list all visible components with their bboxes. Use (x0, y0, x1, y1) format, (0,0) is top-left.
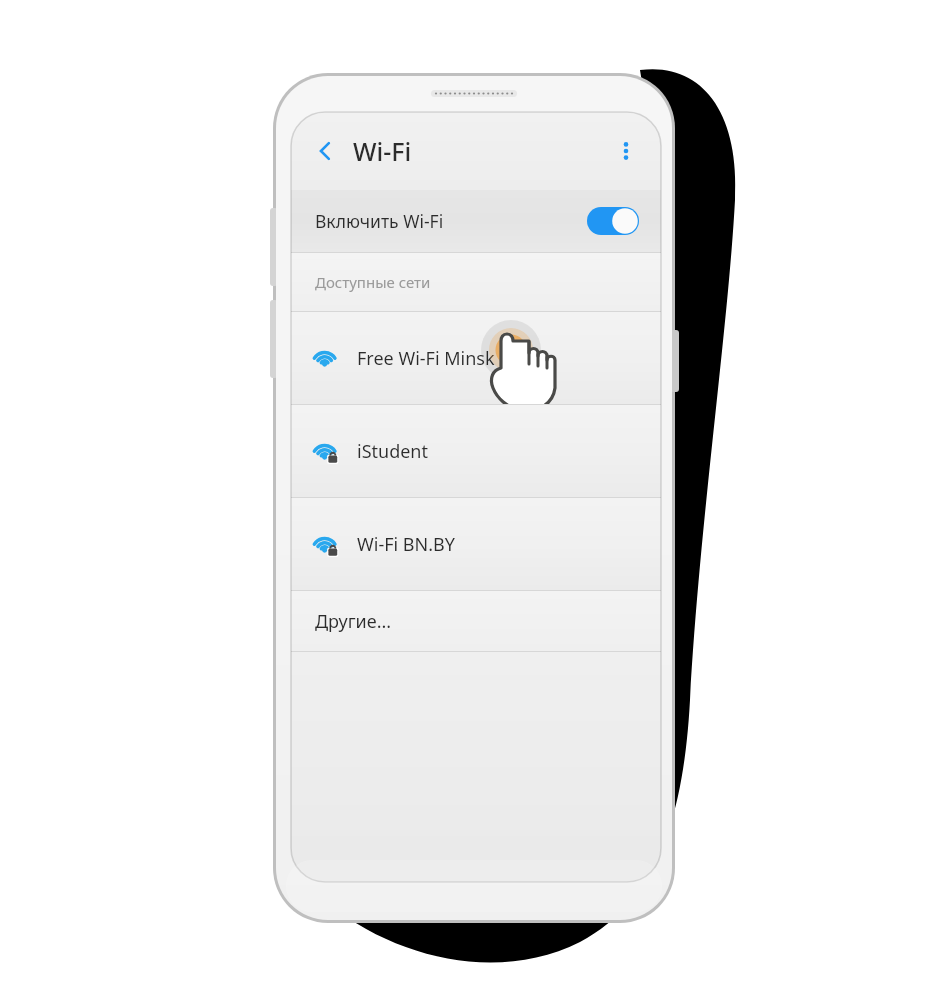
button[interactable]: Включить Wi-Fi (291, 190, 661, 252)
staticText: Включить Wi-Fi (315, 209, 444, 233)
staticText: Free Wi-Fi Minsk (357, 346, 495, 371)
button[interactable]: Back (303, 129, 347, 173)
staticText: Доступные сети (315, 272, 431, 292)
button[interactable]: Wi-Fi BN.BY (291, 498, 661, 590)
staticText: Другие... (315, 609, 392, 634)
button[interactable]: More options (605, 130, 647, 172)
button[interactable]: Другие... (291, 591, 661, 651)
staticText: iStudent (357, 439, 428, 464)
button[interactable]: iStudent (291, 405, 661, 497)
staticText: Wi-Fi BN.BY (357, 532, 455, 557)
staticText: Wi-Fi (353, 134, 412, 168)
button[interactable]: Free Wi-Fi Minsk (291, 312, 661, 404)
